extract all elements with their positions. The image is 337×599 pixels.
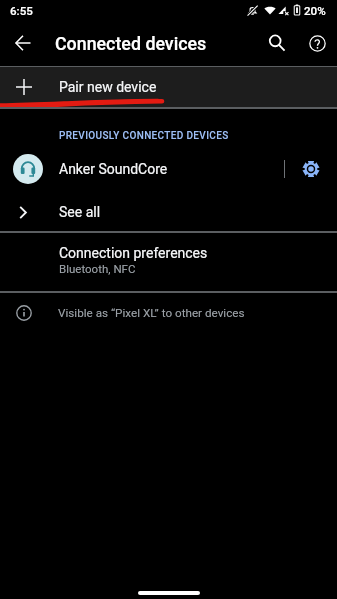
staticText: 20%: [304, 4, 326, 18]
staticText: Connection preferences: [59, 245, 208, 261]
button[interactable]: Back: [6, 26, 40, 60]
staticText: PREVIOUSLY CONNECTED DEVICES: [59, 130, 229, 142]
button[interactable]: Anker SoundCore: [0, 148, 280, 190]
staticText: 6:55: [10, 4, 33, 18]
staticText: See all: [59, 204, 101, 220]
button[interactable]: Help: [300, 26, 334, 60]
button[interactable]: Pair new device: [0, 67, 337, 107]
button[interactable]: Search: [260, 26, 294, 60]
staticText: Connected devices: [55, 33, 207, 54]
button[interactable]: See all: [0, 191, 337, 233]
button[interactable]: Connection preferences: [0, 233, 337, 291]
staticText: Anker SoundCore: [59, 161, 168, 177]
button[interactable]: Device settings: [293, 151, 328, 186]
staticText: Visible as “Pixel XL” to other devices: [58, 306, 245, 320]
staticText: Pair new device: [59, 79, 157, 95]
staticText: Bluetooth, NFC: [59, 262, 136, 275]
